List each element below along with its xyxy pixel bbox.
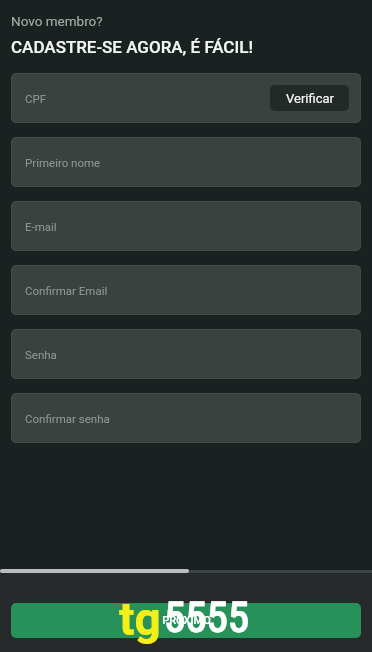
staticText: tg: [119, 592, 161, 646]
button[interactable]: Verificar: [270, 85, 349, 111]
button[interactable]: Primeiro nome: [11, 137, 361, 187]
button[interactable]: Confirmar Email: [11, 265, 361, 315]
staticText: E-mail: [25, 220, 57, 233]
staticText: Senha: [25, 348, 57, 361]
staticText: CADASTRE-SE AGORA, É FÁCIL!: [11, 37, 253, 57]
staticText: CPF: [25, 92, 47, 105]
button[interactable]: Senha: [11, 329, 361, 379]
staticText: 5555: [164, 592, 249, 642]
staticText: Confirmar Email: [25, 284, 108, 297]
button[interactable]: E-mail: [11, 201, 361, 251]
staticText: PRÓXIMO: [162, 614, 211, 627]
staticText: Novo membro?: [11, 13, 103, 29]
staticText: Verificar: [286, 91, 334, 106]
staticText: Primeiro nome: [25, 156, 101, 169]
button[interactable]: CPF: [11, 73, 361, 123]
button[interactable]: Confirmar senha: [11, 393, 361, 443]
button[interactable]: PRÓXIMO: [11, 603, 361, 638]
staticText: Confirmar senha: [25, 412, 110, 425]
